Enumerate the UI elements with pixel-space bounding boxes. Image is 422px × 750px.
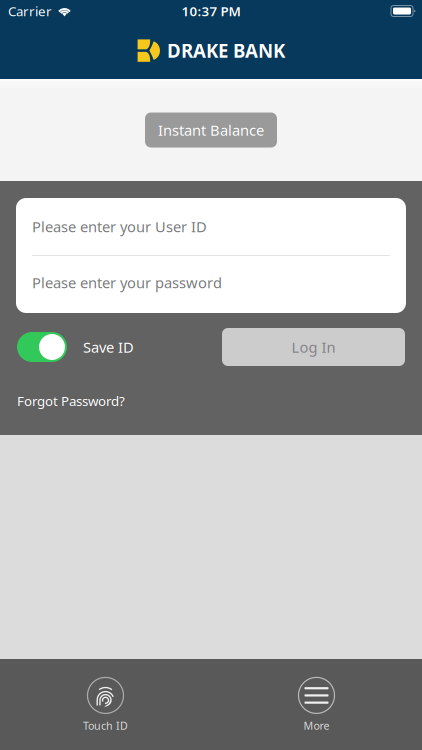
button[interactable]: Forgot Password? [0,366,422,410]
button[interactable]: More [211,669,422,739]
staticText: DRAKE BANK [167,38,285,63]
button[interactable]: Touch ID [0,669,211,739]
staticText: Touch ID [83,718,128,733]
staticText: Save ID [83,337,134,357]
staticText: Log In [291,337,335,357]
button[interactable]: Instant Balance [145,112,277,147]
button[interactable]: Save ID [17,332,134,362]
staticText: Forgot Password? [17,392,125,410]
button[interactable]: Log In [222,328,405,366]
staticText: Instant Balance [158,120,264,140]
staticText: Carrier [8,2,52,20]
staticText: 10:37 PM [181,2,240,20]
staticText: Please enter your password [32,273,222,292]
staticText: Please enter your User ID [32,217,207,236]
staticText: More [303,718,329,733]
